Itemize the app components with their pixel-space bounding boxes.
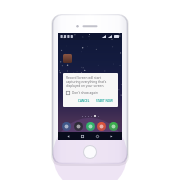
button[interactable]: START NOW [94,98,115,104]
button[interactable]: Messages [74,122,83,131]
button[interactable]: Play Store [109,122,118,131]
button[interactable]: Menu [108,133,115,140]
staticText: START NOW [96,99,113,103]
staticText: CANCEL [78,99,90,103]
button[interactable]: Home button [83,145,97,159]
button[interactable]: Browser [97,122,106,131]
button[interactable]: Camera [62,122,71,131]
button[interactable]: CANCEL [76,98,92,104]
button[interactable]: Back [65,133,72,140]
button[interactable]: Phone [86,122,95,131]
button[interactable]: Don't show again [66,91,98,95]
button[interactable]: Home [79,133,86,140]
button[interactable]: Application [63,54,72,63]
staticText: Don't show again [72,91,98,95]
button[interactable]: Recent apps [94,133,101,140]
staticText: Record Screen will start capturing every… [66,76,115,88]
